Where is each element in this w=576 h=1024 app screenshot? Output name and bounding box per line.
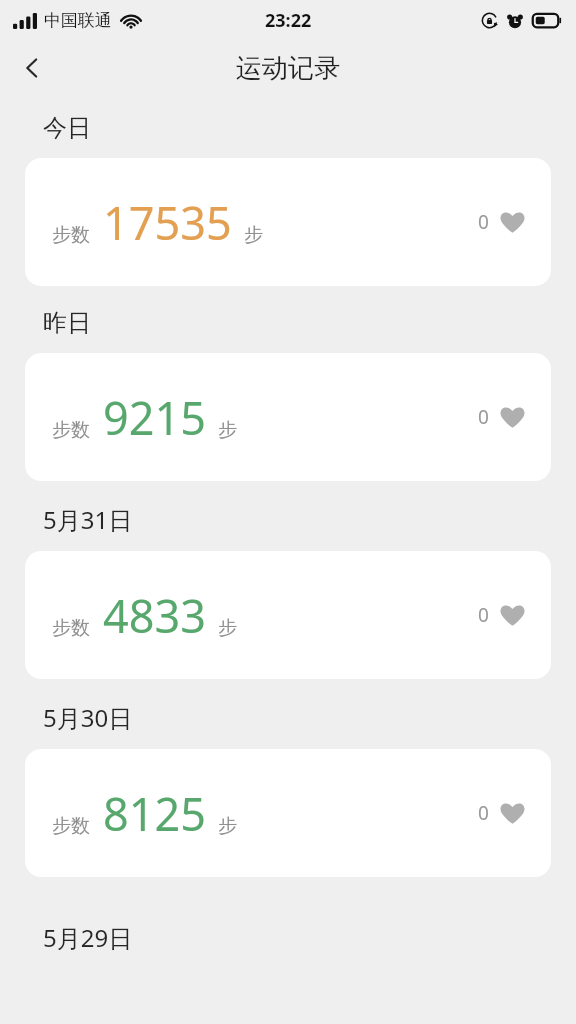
staticText: 0 [478,404,489,430]
button[interactable]: 步数 [25,749,551,877]
staticText: 中国联通 [44,10,112,31]
button[interactable]: Back [6,42,58,94]
staticText: 步数 [52,814,90,838]
staticText: 昨日 [43,308,91,338]
staticText: 5月29日 [43,921,133,954]
button[interactable]: 步数 [25,158,551,286]
staticText: 5月31日 [43,503,133,536]
staticText: 运动记录 [236,52,340,85]
button[interactable]: 步数 [25,353,551,481]
staticText: 步数 [52,616,90,640]
staticText: 步 [218,616,237,640]
staticText: 9215 [103,387,206,448]
staticText: 0 [478,209,489,235]
staticText: 17535 [103,192,232,253]
button[interactable]: Like [474,396,529,438]
button[interactable]: Like [474,594,529,636]
staticText: 步数 [52,223,90,247]
staticText: 0 [478,800,489,826]
staticText: 步数 [52,418,90,442]
staticText: 5月30日 [43,701,133,734]
staticText: 0 [478,602,489,628]
staticText: 23:22 [265,8,312,33]
button[interactable]: Like [474,792,529,834]
staticText: 步 [218,814,237,838]
button[interactable]: Like [474,201,529,243]
staticText: 步 [244,223,263,247]
staticText: 8125 [103,783,206,844]
button[interactable]: 步数 [25,551,551,679]
staticText: 4833 [103,585,206,646]
staticText: 今日 [43,113,91,143]
staticText: 步 [218,418,237,442]
